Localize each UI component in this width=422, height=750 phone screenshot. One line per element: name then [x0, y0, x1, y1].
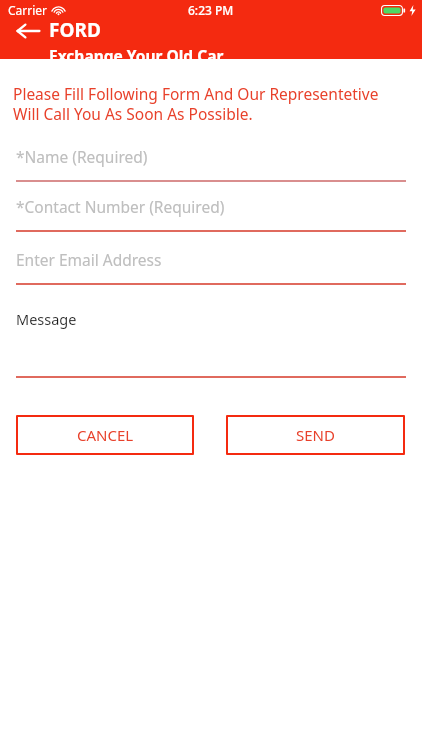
staticText: Message	[16, 309, 77, 329]
staticText: Carrier	[8, 2, 48, 18]
button[interactable]: *Contact Number (Required)	[16, 196, 406, 232]
staticText: 6:23 PM	[188, 2, 234, 18]
staticText: Please Fill Following Form And Our Repre…	[13, 83, 408, 125]
button[interactable]: SEND	[226, 415, 405, 455]
button[interactable]: Message	[16, 309, 406, 378]
button[interactable]: CANCEL	[16, 415, 194, 455]
staticText: *Contact Number (Required)	[16, 196, 225, 217]
staticText: Enter Email Address	[16, 249, 162, 270]
button[interactable]: *Name (Required)	[16, 146, 406, 182]
staticText: CANCEL	[77, 425, 134, 445]
staticText: Exchange Your Old Car	[49, 45, 224, 66]
staticText: FORD	[49, 17, 101, 43]
button[interactable]: Enter Email Address	[16, 249, 406, 285]
staticText: *Name (Required)	[16, 146, 148, 167]
staticText: SEND	[296, 425, 335, 445]
button[interactable]: Back	[8, 18, 48, 44]
